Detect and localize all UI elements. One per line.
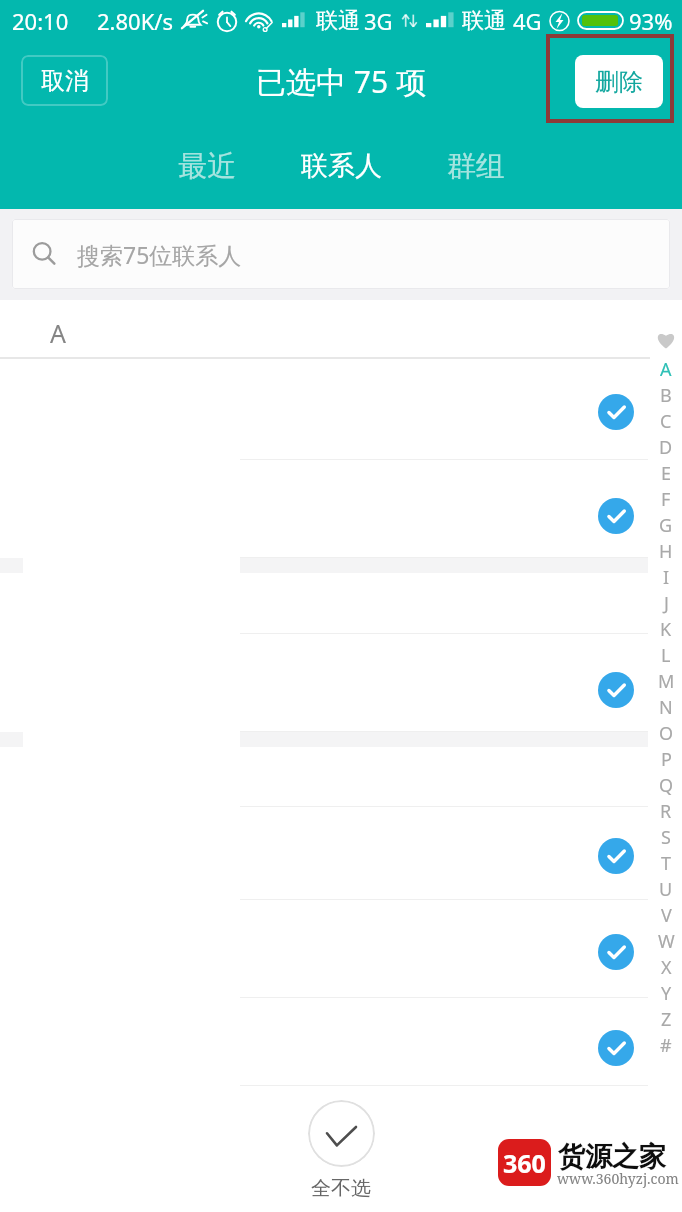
staticText: 93% [629, 6, 673, 36]
staticText: H [659, 539, 673, 564]
other: Selected [598, 394, 634, 430]
button[interactable]: Selected [0, 998, 682, 1086]
staticText: D [659, 435, 673, 460]
staticText: X [661, 955, 672, 980]
button[interactable] [0, 573, 682, 634]
staticText: 联通 [316, 7, 360, 35]
button[interactable]: Selected [0, 359, 682, 460]
staticText: A [50, 316, 66, 350]
button[interactable]: Selected [0, 634, 682, 732]
staticText: P [661, 747, 672, 772]
staticText: O [659, 721, 674, 746]
staticText: C [660, 409, 672, 434]
staticText: F [661, 487, 671, 512]
staticText: 20:10 [12, 6, 69, 36]
staticText: N [659, 695, 673, 720]
button[interactable]: 最近 [144, 133, 269, 199]
staticText: V [661, 903, 672, 928]
staticText: Y [661, 981, 672, 1006]
staticText: B [660, 383, 672, 408]
staticText: W [658, 929, 675, 954]
staticText: 联通 [462, 7, 506, 35]
button[interactable] [0, 747, 682, 807]
button[interactable]: Selected [0, 807, 682, 900]
staticText: 3G [364, 6, 393, 36]
other: Selected [598, 934, 634, 970]
button[interactable]: Alphabet index [650, 330, 682, 1058]
staticText: S [661, 825, 671, 850]
other: Selected [598, 838, 634, 874]
other: Selected [598, 672, 634, 708]
staticText: 2.80K/s [97, 6, 173, 36]
staticText: K [660, 617, 672, 642]
staticText: L [661, 643, 671, 668]
button[interactable]: 取消 [21, 55, 108, 106]
other: Selected [598, 1030, 634, 1066]
staticText: I [663, 565, 670, 590]
staticText: 删除 [595, 67, 643, 97]
button[interactable]: Selected [0, 900, 682, 998]
staticText: www.360hyzj.com [557, 1169, 679, 1188]
button[interactable]: Search [12, 219, 670, 289]
staticText: Q [659, 773, 674, 798]
staticText: A [660, 357, 672, 382]
staticText: 取消 [41, 66, 89, 96]
staticText: # [660, 1033, 672, 1058]
staticText: E [661, 461, 672, 486]
staticText: 群组 [447, 148, 505, 185]
staticText: M [658, 669, 675, 694]
staticText: 4G [513, 6, 542, 36]
staticText: 已选中 75 项 [256, 61, 426, 102]
other: Search [32, 241, 58, 267]
button[interactable]: Selected [0, 460, 682, 558]
staticText: 货源之家 [558, 1140, 666, 1174]
staticText: Z [661, 1007, 672, 1032]
button[interactable]: 全不选 [302, 1100, 380, 1201]
button[interactable]: 联系人 [269, 133, 413, 199]
button[interactable]: 群组 [413, 133, 538, 199]
staticText: 搜索75位联系人 [77, 239, 242, 270]
staticText: 联系人 [301, 149, 382, 183]
other: Selected [598, 498, 634, 534]
staticText: 全不选 [311, 1176, 371, 1201]
staticText: R [660, 799, 672, 824]
staticText: T [661, 851, 672, 876]
staticText: J [664, 591, 669, 616]
button[interactable]: 删除 [575, 55, 663, 108]
staticText: 360 [503, 1146, 546, 1180]
staticText: U [659, 877, 673, 902]
staticText: 最近 [178, 148, 236, 185]
staticText: G [659, 513, 673, 538]
